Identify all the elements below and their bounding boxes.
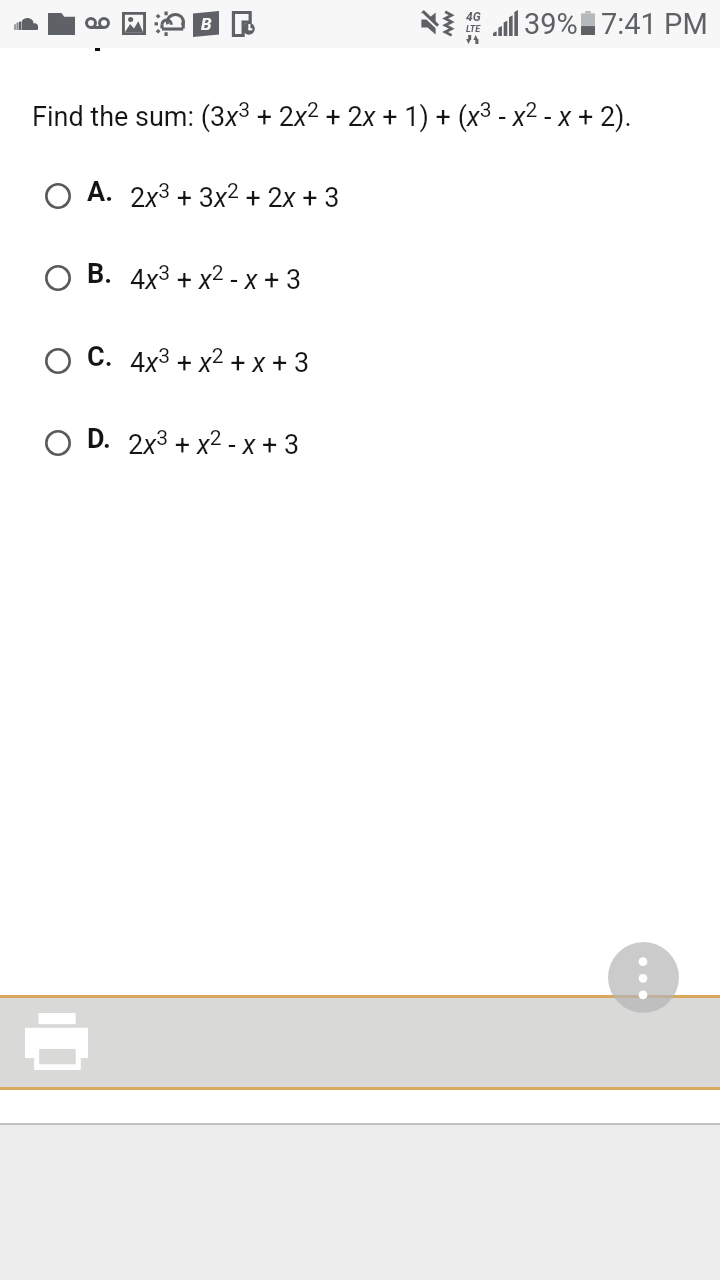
- button[interactable]: C.: [0, 321, 720, 400]
- staticText: B.: [87, 258, 113, 290]
- staticText: A.: [87, 176, 113, 208]
- staticText: 4G: [466, 10, 481, 24]
- staticText: 39%: [524, 7, 578, 41]
- staticText: LTE: [466, 24, 481, 35]
- staticText: D.: [87, 423, 111, 455]
- staticText: Find the sum: (3x3 + 2x2 + 2x + 1) + (x3…: [32, 97, 632, 132]
- staticText: 4x3 + x2 - x + 3: [130, 260, 302, 295]
- button[interactable]: D.: [0, 403, 720, 482]
- button[interactable]: B.: [0, 238, 720, 317]
- staticText: 4x3 + x2 + x + 3: [130, 343, 310, 378]
- staticText: 2x3 + x2 - x + 3: [128, 425, 300, 460]
- staticText: 2x3 + 3x2 + 2x + 3: [130, 178, 340, 213]
- button[interactable]: Print: [0, 998, 720, 1087]
- staticText: C.: [87, 341, 113, 373]
- staticText: 7:41 PM: [601, 7, 708, 41]
- button[interactable]: More options: [608, 942, 679, 1013]
- button[interactable]: A.: [0, 156, 720, 235]
- staticText: B: [201, 14, 212, 34]
